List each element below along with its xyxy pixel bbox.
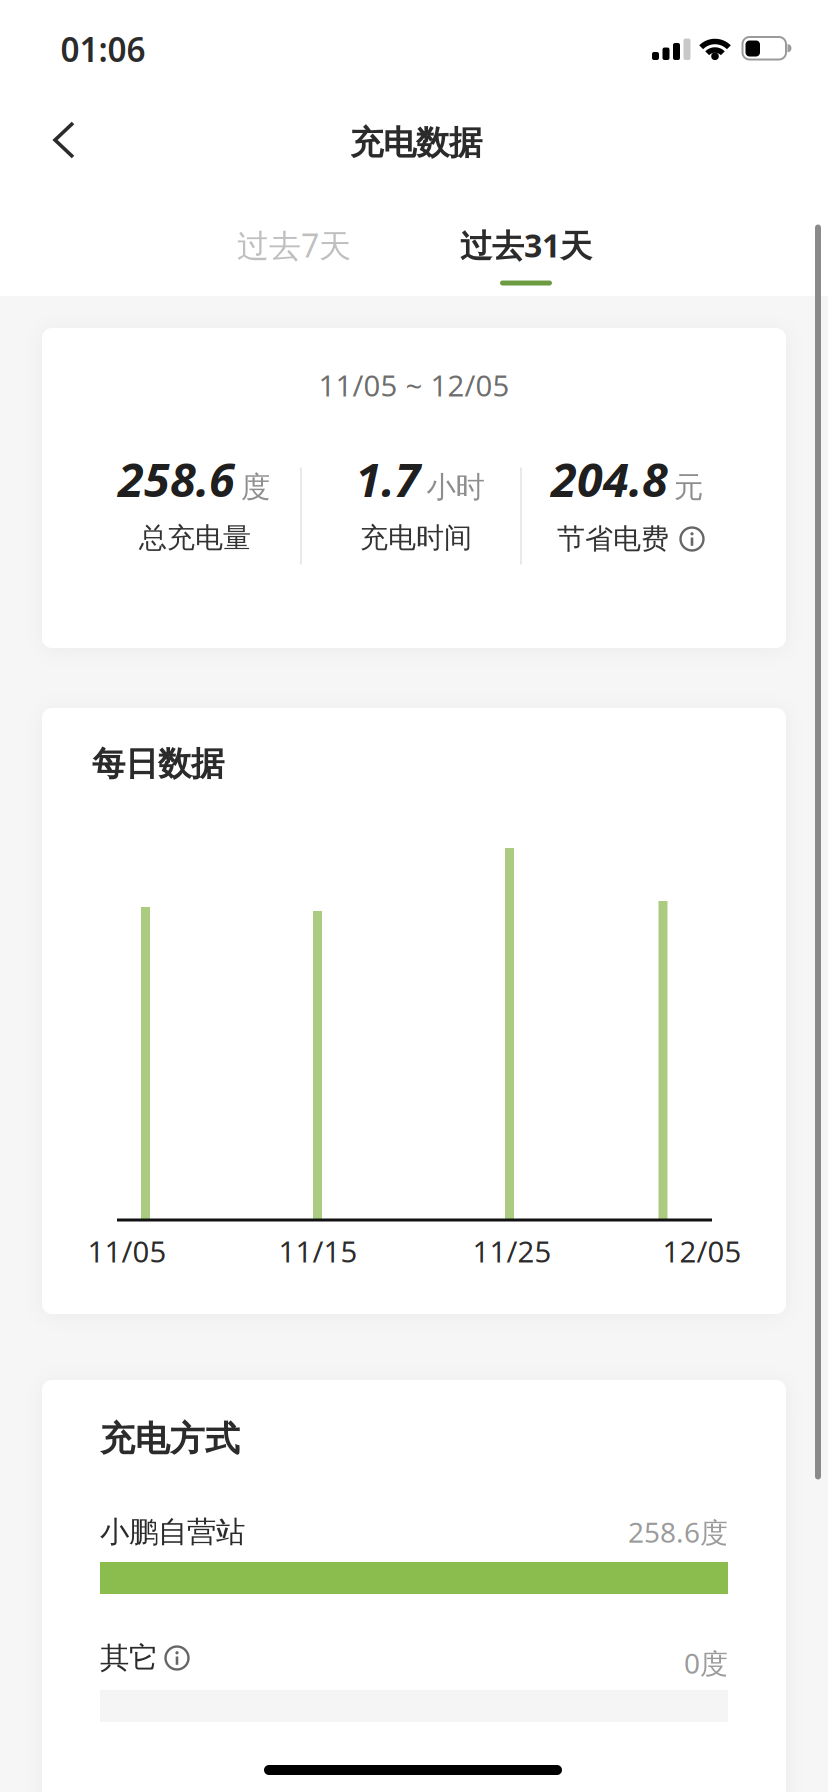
staticText: 小鹏自营站 — [100, 1514, 245, 1550]
staticText: 1.7 — [355, 448, 420, 510]
staticText: 11/05 — [87, 1231, 166, 1270]
staticText: 总充电量 — [139, 521, 251, 555]
staticText: 充电数据 — [350, 122, 482, 163]
button[interactable]: Back — [19, 96, 107, 184]
staticText: 11/25 — [472, 1231, 551, 1270]
staticText: 元 — [674, 469, 703, 505]
staticText: 节省电费 — [557, 522, 669, 556]
staticText: 每日数据 — [92, 743, 224, 784]
staticText: 12/05 — [662, 1231, 741, 1270]
staticText: 小时 — [426, 469, 484, 505]
staticText: 258.6度 — [628, 1513, 728, 1551]
staticText: 其它 — [100, 1640, 158, 1676]
staticText: 204.8 — [551, 448, 668, 510]
button[interactable]: 过去7天 — [204, 210, 384, 280]
staticText: 11/05 ~ 12/05 — [318, 365, 509, 404]
staticText: 0度 — [684, 1644, 728, 1682]
button[interactable]: What is other charging — [164, 1645, 190, 1671]
staticText: 充电时间 — [360, 521, 472, 555]
button[interactable]: What is saved electricity fee — [679, 526, 705, 552]
button[interactable]: 过去31天 — [431, 210, 621, 280]
staticText: 充电方式 — [100, 1418, 240, 1460]
staticText: 258.6 — [118, 448, 235, 510]
staticText: 过去7天 — [237, 224, 351, 266]
staticText: 11/15 — [278, 1231, 357, 1270]
staticText: 过去31天 — [460, 224, 592, 266]
staticText: 01:06 — [60, 27, 145, 71]
staticText: 度 — [241, 469, 270, 505]
